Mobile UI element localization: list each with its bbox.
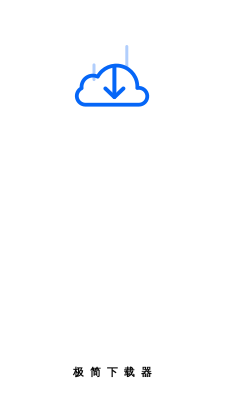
staticText: 极简下载器 [73,366,152,379]
